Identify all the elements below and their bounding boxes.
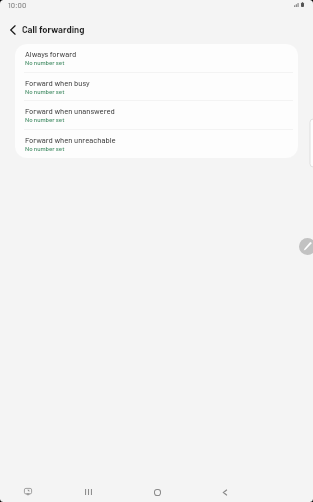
staticText: No number set bbox=[25, 145, 65, 152]
staticText: No number set bbox=[25, 116, 65, 123]
staticText: No number set bbox=[25, 59, 65, 66]
button[interactable]: Screenshot bbox=[17, 480, 39, 502]
staticText: 10:00 bbox=[8, 0, 27, 9]
button[interactable]: Forward when unreachable bbox=[15, 130, 298, 158]
staticText: No number set bbox=[25, 88, 65, 95]
staticText: Forward when unreachable bbox=[25, 135, 116, 144]
button[interactable]: Always forward bbox=[15, 44, 298, 73]
staticText: Forward when unanswered bbox=[25, 106, 115, 115]
button[interactable]: Back bbox=[214, 480, 236, 502]
button[interactable]: Edit bbox=[299, 238, 313, 255]
button[interactable]: Back bbox=[3, 20, 22, 39]
staticText: Forward when busy bbox=[25, 78, 90, 87]
button[interactable]: Recent apps bbox=[77, 480, 99, 502]
button[interactable]: Home bbox=[146, 480, 168, 502]
button[interactable]: Forward when unanswered bbox=[15, 101, 298, 130]
button[interactable]: Forward when busy bbox=[15, 73, 298, 102]
staticText: Always forward bbox=[25, 49, 77, 58]
staticText: Call forwarding bbox=[22, 24, 85, 35]
